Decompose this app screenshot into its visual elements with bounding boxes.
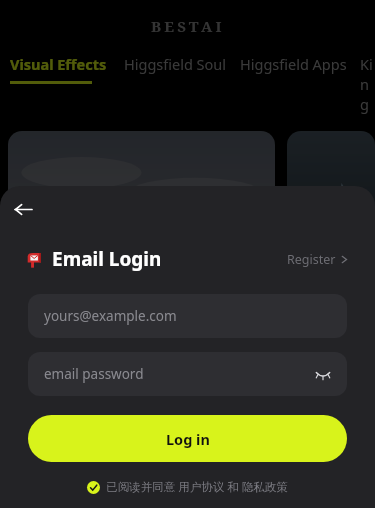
staticText: BESTAI <box>151 16 225 36</box>
button[interactable]: Visual Effects <box>10 54 107 84</box>
staticText: Email Login <box>52 246 162 272</box>
button[interactable]: Log in <box>28 415 347 462</box>
button[interactable] <box>8 131 275 391</box>
staticText: 已阅读并同意 用户协议 和 隐私政策 <box>106 479 288 495</box>
staticText: Log in <box>166 429 210 449</box>
button[interactable] <box>287 131 375 391</box>
button[interactable]: 已阅读并同意 用户协议 和 隐私政策 <box>0 479 375 495</box>
button[interactable]: Back <box>8 194 38 224</box>
button[interactable]: Show password <box>311 362 335 386</box>
staticText: Visual Effects <box>10 54 107 74</box>
button[interactable]: yours@example.com <box>28 294 347 338</box>
staticText: email password <box>44 365 144 383</box>
button[interactable]: Register <box>285 247 351 272</box>
staticText: Register <box>287 251 336 268</box>
button[interactable]: Higgsfield Apps <box>240 54 347 74</box>
button[interactable]: King <box>360 54 375 114</box>
button[interactable]: email password <box>28 352 347 396</box>
staticText: yours@example.com <box>44 307 177 325</box>
button[interactable]: Higgsfield Soul <box>124 54 227 74</box>
